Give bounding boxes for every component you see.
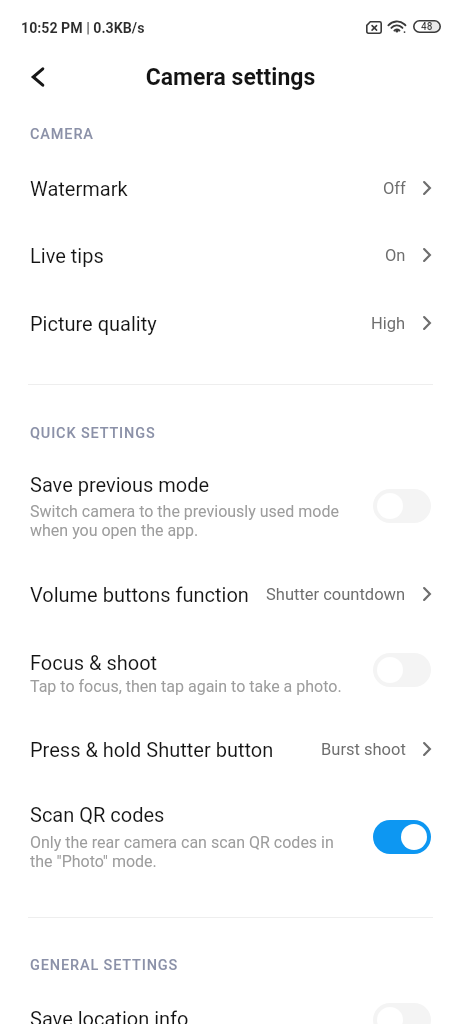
staticText: QUICK SETTINGS xyxy=(30,425,156,442)
staticText: Camera settings xyxy=(0,64,461,91)
button[interactable]: Save previous mode xyxy=(0,462,461,554)
staticText: Save location info xyxy=(30,1007,189,1024)
button[interactable]: Volume buttons function xyxy=(0,560,461,628)
staticText: Switch camera to the previously used mod… xyxy=(30,502,339,540)
staticText: High xyxy=(371,314,406,333)
staticText: Only the rear camera can scan QR codes i… xyxy=(30,833,334,871)
button[interactable]: Switch off xyxy=(373,1003,431,1024)
staticText: Save previous mode xyxy=(30,473,210,496)
button[interactable]: Focus & shoot xyxy=(0,640,461,710)
button[interactable]: Picture quality xyxy=(0,289,461,357)
staticText: GENERAL SETTINGS xyxy=(30,957,179,974)
staticText: Watermark xyxy=(30,177,128,200)
button[interactable]: Switch on xyxy=(373,820,431,854)
staticText: Live tips xyxy=(30,244,104,267)
staticText: CAMERA xyxy=(30,126,94,143)
staticText: Tap to focus, then tap again to take a p… xyxy=(30,677,342,696)
staticText: Shutter countdown xyxy=(266,585,406,604)
staticText: Scan QR codes xyxy=(30,803,165,826)
button[interactable]: Save location info xyxy=(0,996,461,1024)
staticText: 10:52 PM | 0.3KB/s xyxy=(21,20,145,37)
staticText: Burst shoot xyxy=(321,740,406,759)
button[interactable]: Switch off xyxy=(373,489,431,523)
staticText: Volume buttons function xyxy=(30,583,249,606)
button[interactable]: Press & hold Shutter button xyxy=(0,715,461,783)
staticText: Focus & shoot xyxy=(30,651,158,674)
button[interactable]: Live tips xyxy=(0,221,461,289)
staticText: 48 xyxy=(421,21,433,33)
button[interactable]: Watermark xyxy=(0,154,461,222)
button[interactable]: Scan QR codes xyxy=(0,792,461,885)
button[interactable]: Switch off xyxy=(373,653,431,687)
staticText: Off xyxy=(383,179,406,198)
button[interactable]: Back xyxy=(16,55,60,99)
staticText: Press & hold Shutter button xyxy=(30,738,274,761)
staticText: Picture quality xyxy=(30,312,157,335)
staticText: On xyxy=(385,246,406,265)
